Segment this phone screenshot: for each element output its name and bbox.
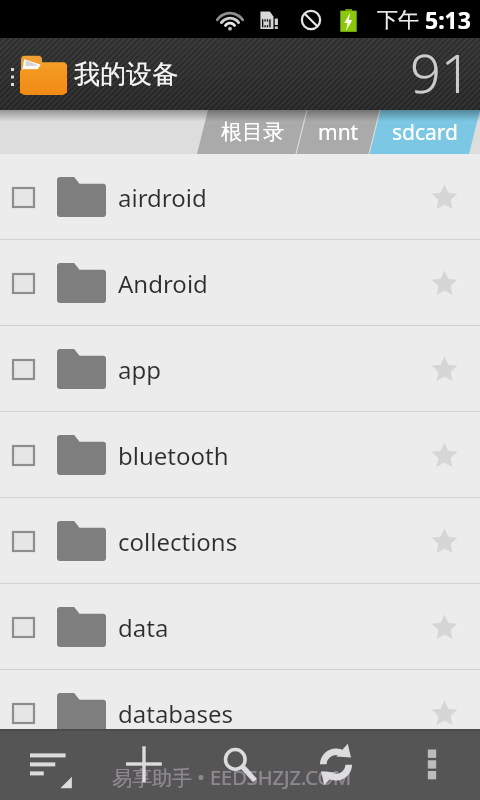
staticText: 91: [410, 35, 472, 107]
staticText: app: [118, 353, 161, 386]
button[interactable]: Select data: [0, 584, 480, 670]
button[interactable]: Select Android: [0, 240, 480, 326]
button[interactable]: Select bluetooth: [0, 412, 480, 498]
button[interactable]: Select data: [13, 618, 34, 637]
button[interactable]: Favourite Android: [419, 258, 469, 308]
button[interactable]: Sort: [0, 729, 96, 800]
button[interactable]: 根目录: [203, 110, 302, 154]
button[interactable]: Favourite airdroid: [419, 172, 469, 222]
button[interactable]: Select Android: [13, 274, 34, 293]
staticText: 下午: [377, 5, 425, 34]
button[interactable]: Select app: [0, 326, 480, 412]
staticText: mnt: [318, 118, 359, 147]
staticText: sdcard: [392, 118, 459, 147]
button[interactable]: More: [384, 729, 480, 800]
button[interactable]: Select collections: [0, 498, 480, 584]
button[interactable]: Select app: [13, 360, 34, 379]
button[interactable]: Favourite bluetooth: [419, 430, 469, 480]
button[interactable]: Select collections: [13, 532, 34, 551]
staticText: databases: [118, 697, 234, 730]
button[interactable]: mnt: [302, 110, 375, 154]
button[interactable]: Favourite collections: [419, 516, 469, 566]
staticText: 根目录: [221, 119, 284, 145]
staticText: airdroid: [118, 181, 207, 214]
button[interactable]: Favourite databases: [419, 688, 469, 738]
staticText: bluetooth: [118, 439, 229, 472]
button[interactable]: sdcard: [375, 110, 475, 154]
button[interactable]: 我的设备: [0, 38, 480, 110]
staticText: data: [118, 611, 169, 644]
button[interactable]: Add: [96, 729, 192, 800]
button[interactable]: Refresh: [288, 729, 384, 800]
button[interactable]: Select airdroid: [13, 188, 34, 207]
button[interactable]: Favourite app: [419, 344, 469, 394]
staticText: collections: [118, 525, 238, 558]
button[interactable]: Favourite data: [419, 602, 469, 652]
button[interactable]: Select bluetooth: [13, 446, 34, 465]
button[interactable]: Select databases: [13, 704, 34, 723]
staticText: 5:13: [425, 4, 471, 35]
button[interactable]: Search: [192, 729, 288, 800]
staticText: 我的设备: [74, 58, 178, 91]
staticText: Android: [118, 267, 208, 300]
staticText: 易享助手 • EEDSHZJZ.COM: [112, 764, 352, 791]
button[interactable]: Select airdroid: [0, 154, 480, 240]
button[interactable]: Select databases: [0, 670, 480, 756]
